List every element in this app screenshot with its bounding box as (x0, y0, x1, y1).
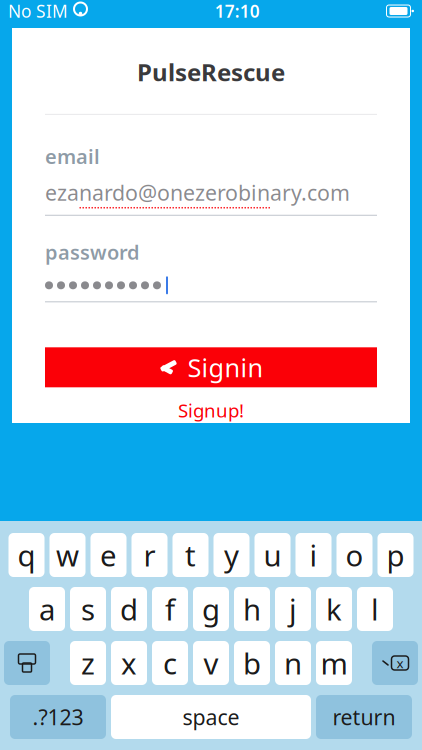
staticText: password (45, 239, 140, 265)
staticText: q (17, 535, 35, 574)
button[interactable]: Signup! (45, 399, 377, 421)
button[interactable]: t (172, 533, 208, 577)
button[interactable]: o (336, 533, 372, 577)
staticText: x (396, 654, 403, 672)
staticText: p (386, 535, 404, 574)
button[interactable]: p (377, 533, 413, 577)
staticText: j (289, 589, 297, 628)
staticText: return (332, 703, 395, 731)
staticText: b (243, 643, 261, 682)
staticText: i (309, 535, 317, 574)
staticText: e (100, 535, 117, 574)
button[interactable]: u (254, 533, 290, 577)
staticText: ezanardo@onezerobinary.com (45, 178, 350, 207)
staticText: Signin (187, 350, 263, 384)
button[interactable]: Shift (4, 641, 50, 685)
button[interactable]: h (234, 587, 270, 631)
button[interactable]: c (152, 641, 188, 685)
staticText: c (163, 643, 177, 682)
button[interactable]: b (234, 641, 270, 685)
staticText: g (202, 589, 220, 628)
button[interactable]: .?123 (10, 695, 106, 739)
staticText: f (165, 589, 175, 628)
staticText: r (143, 535, 155, 574)
staticText: PulseRescue (137, 56, 285, 88)
staticText: x (121, 643, 137, 682)
staticText: k (326, 589, 342, 628)
staticText: a (39, 589, 55, 628)
button[interactable]: z (70, 641, 106, 685)
button[interactable]: f (152, 587, 188, 631)
button[interactable]: space (111, 695, 311, 739)
button[interactable]: Signin (45, 347, 377, 387)
staticText: Signup! (178, 398, 244, 423)
button[interactable]: s (70, 587, 106, 631)
staticText: space (182, 703, 239, 731)
button[interactable]: Delete (372, 641, 418, 685)
button[interactable]: k (316, 587, 352, 631)
button[interactable]: v (193, 641, 229, 685)
button[interactable]: n (275, 641, 311, 685)
staticText: email (45, 143, 100, 169)
staticText: n (284, 643, 302, 682)
button[interactable]: e (90, 533, 126, 577)
button[interactable]: j (275, 587, 311, 631)
staticText: No SIM (8, 0, 68, 22)
button[interactable]: l (357, 587, 393, 631)
staticText: .?123 (32, 703, 83, 731)
button[interactable]: y (213, 533, 249, 577)
staticText: d (120, 589, 138, 628)
staticText: z (81, 643, 95, 682)
staticText: l (371, 589, 379, 628)
button[interactable]: a (29, 587, 65, 631)
button[interactable]: g (193, 587, 229, 631)
staticText: u (263, 535, 281, 574)
staticText: w (56, 535, 79, 574)
staticText: y (224, 535, 239, 574)
button[interactable]: i (295, 533, 331, 577)
staticText: h (243, 589, 261, 628)
staticText: s (81, 589, 95, 628)
staticText: m (320, 643, 347, 682)
staticText: t (185, 535, 196, 574)
staticText: o (345, 535, 363, 574)
button[interactable]: r (131, 533, 167, 577)
staticText: v (203, 643, 218, 682)
button[interactable]: d (111, 587, 147, 631)
button[interactable]: return (316, 695, 412, 739)
button[interactable]: x (111, 641, 147, 685)
staticText: 17:10 (215, 0, 260, 22)
button[interactable]: q (8, 533, 44, 577)
button[interactable]: w (49, 533, 85, 577)
button[interactable]: m (316, 641, 352, 685)
